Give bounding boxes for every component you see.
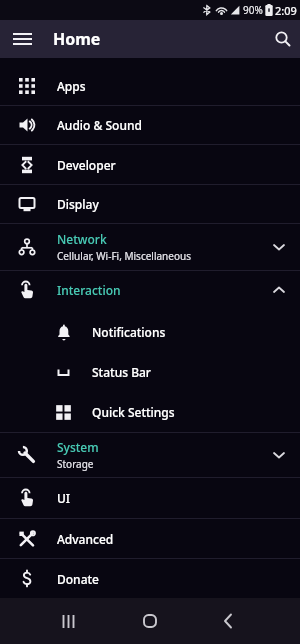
staticText: UI — [57, 490, 71, 506]
staticText: Interaction — [57, 282, 121, 298]
button[interactable]: Display — [0, 185, 300, 223]
staticText: Developer — [57, 157, 116, 173]
button[interactable]: Advanced — [0, 519, 300, 558]
staticText: Advanced — [57, 531, 114, 547]
staticText: System — [57, 439, 99, 455]
button[interactable]: Donate — [0, 559, 300, 598]
staticText: Status Bar — [92, 364, 151, 380]
staticText: Audio & Sound — [57, 117, 142, 133]
staticText: Storage — [57, 457, 94, 471]
button[interactable]: Developer — [0, 145, 300, 184]
staticText: 90% — [243, 3, 263, 17]
button[interactable]: UI — [0, 478, 300, 518]
button[interactable] — [206, 598, 250, 644]
button[interactable]: System — [0, 433, 300, 477]
staticText: Display — [57, 196, 99, 212]
button[interactable] — [128, 598, 172, 644]
button[interactable]: Apps — [0, 66, 300, 105]
button[interactable] — [0, 20, 44, 58]
button[interactable] — [46, 598, 90, 644]
staticText: Network — [57, 231, 107, 247]
staticText: Quick Settings — [92, 404, 175, 420]
staticText: Cellular, Wi-Fi, Miscellaneous — [57, 249, 191, 263]
staticText: Apps — [57, 78, 86, 94]
button[interactable]: Status Bar — [0, 352, 300, 392]
button[interactable]: Audio & Sound — [0, 106, 300, 144]
button[interactable]: Network — [0, 224, 300, 270]
staticText: 2:09 — [275, 3, 297, 18]
button[interactable]: Interaction — [0, 271, 300, 308]
button[interactable] — [266, 20, 300, 58]
staticText: Donate — [57, 571, 99, 587]
button[interactable]: Quick Settings — [0, 392, 300, 432]
staticText: Home — [53, 28, 101, 50]
button[interactable]: Notifications — [0, 312, 300, 352]
staticText: Notifications — [92, 324, 166, 340]
